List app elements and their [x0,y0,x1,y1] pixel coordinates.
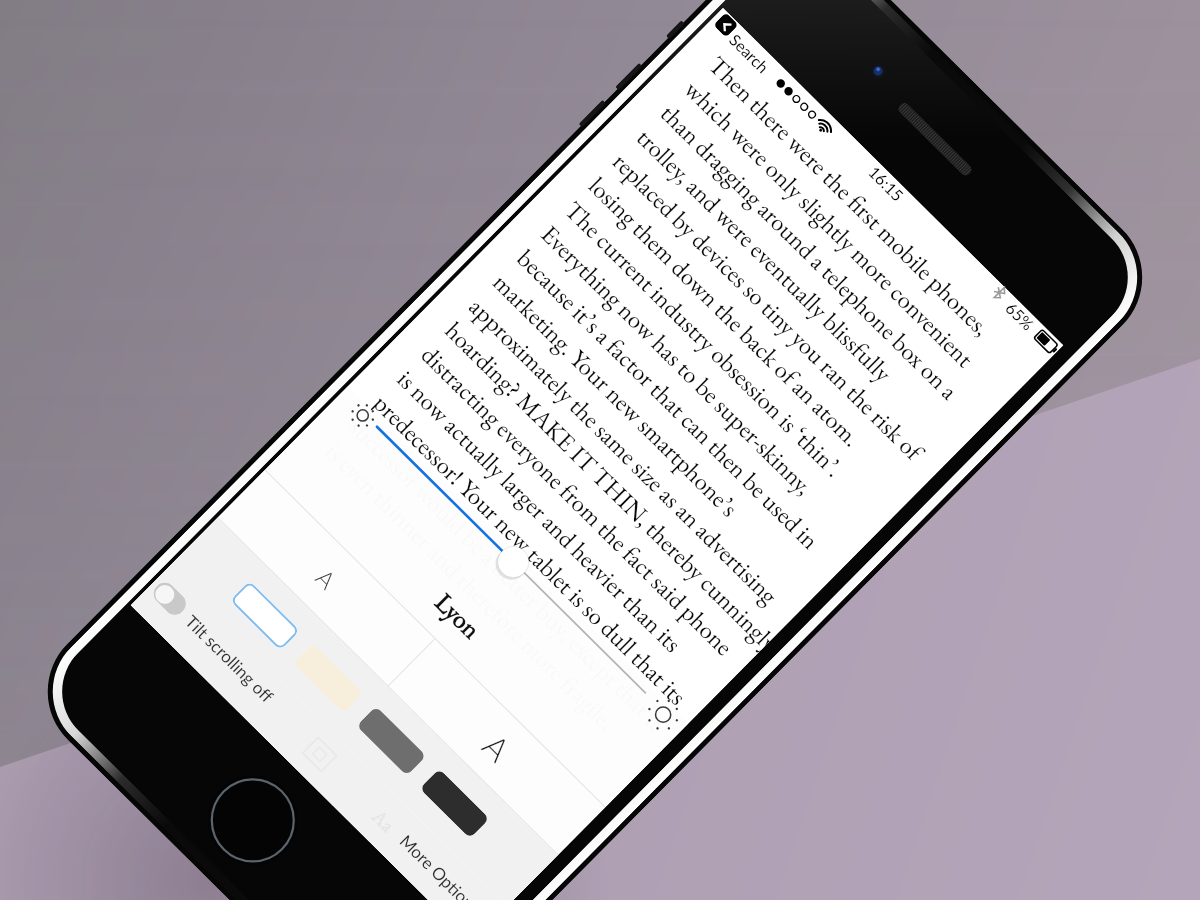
staticText: Lyon [428,585,489,646]
other: Silent switch [666,20,685,39]
staticText: 65% [1002,298,1038,334]
button[interactable]: Tilt scrolling [149,578,279,707]
staticText: Tilt scrolling off [182,611,278,706]
button[interactable]: Lyon [266,424,651,806]
button[interactable]: Theme colour [356,706,426,776]
staticText: A [475,725,519,769]
button[interactable]: Home [189,757,316,884]
other: Volume down [578,100,606,127]
staticText: 16:15 [865,162,908,205]
button[interactable]: More Options [396,830,485,900]
button[interactable]: A [218,470,434,685]
staticText: A [310,563,342,595]
staticText: Aa [367,804,400,838]
button[interactable]: Theme colour [230,581,300,651]
button[interactable]: Theme colour [293,643,363,713]
other: Page layout [302,737,337,772]
button[interactable]: Tilt scrolling [149,578,190,619]
button[interactable]: Theme colour [419,769,490,839]
button[interactable]: Search [726,30,773,77]
other: Volume up [615,63,643,90]
button[interactable]: A [389,639,605,854]
staticText: Then there were the first mobile phones,… [318,49,1043,775]
button[interactable]: Back [713,12,739,38]
